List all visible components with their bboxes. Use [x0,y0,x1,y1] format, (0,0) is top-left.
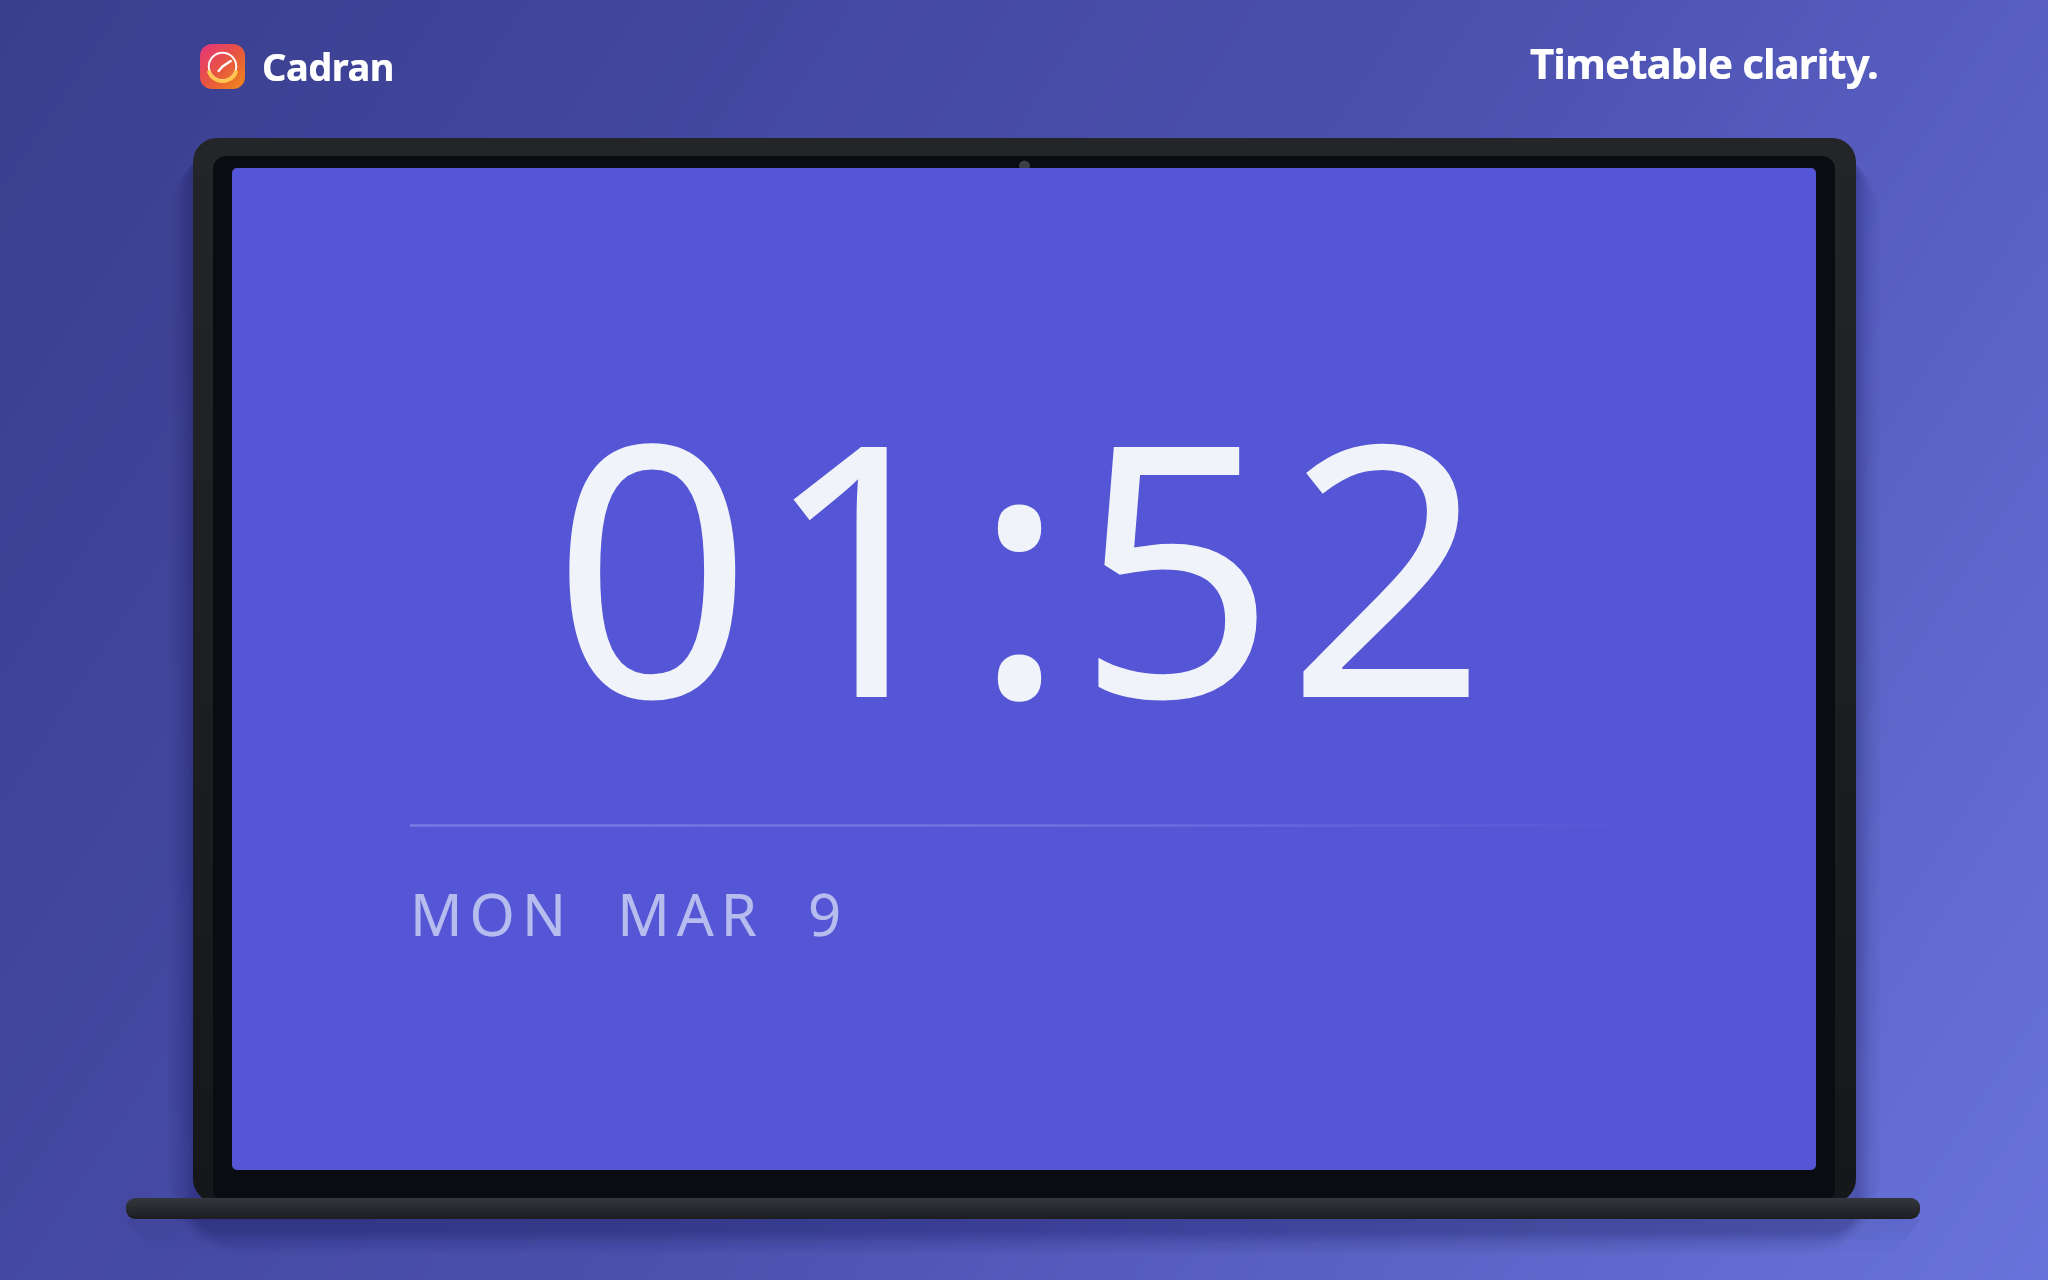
staticText: Timetable clarity. [1529,34,1878,91]
button[interactable]: Timetable clarity. [1525,30,1882,95]
staticText: 01:52 [552,323,1497,800]
other: Cadran app icon [200,44,245,89]
staticText: Cadran [262,40,394,92]
button[interactable]: Cadran app icon [196,36,398,96]
button[interactable]: MON MAR 9 [404,868,855,959]
button[interactable]: 01:52 [232,168,1816,1170]
staticText: MON MAR 9 [410,874,849,953]
